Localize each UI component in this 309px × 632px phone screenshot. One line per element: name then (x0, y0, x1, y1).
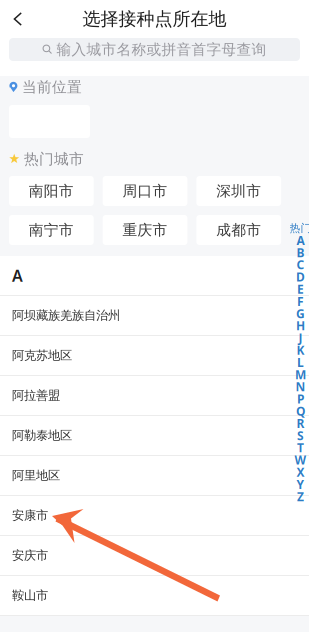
staticText: P (297, 391, 304, 407)
button[interactable]: E (292, 283, 309, 295)
button[interactable]: 安康市 (0, 496, 309, 536)
button[interactable]: K (292, 344, 309, 356)
staticText: H (296, 318, 305, 334)
staticText: J (298, 330, 302, 346)
staticText: 输入城市名称或拼音首字母查询 (56, 40, 266, 58)
staticText: L (297, 354, 304, 370)
button[interactable]: G (292, 307, 309, 320)
button[interactable]: 输入城市名称或拼音首字母查询 (9, 38, 300, 61)
button[interactable]: T (292, 442, 309, 454)
button[interactable]: 热门 (288, 222, 309, 234)
staticText: 阿克苏地区 (12, 348, 72, 363)
staticText: D (296, 269, 305, 285)
staticText: K (296, 342, 304, 358)
button[interactable]: S (292, 429, 309, 442)
staticText: Y (296, 476, 304, 492)
button[interactable]: 阿里地区 (0, 456, 309, 496)
staticText: M (295, 366, 306, 382)
button[interactable]: F (292, 295, 309, 307)
staticText: 深圳市 (216, 182, 261, 200)
staticText: 当前位置 (22, 78, 82, 96)
staticText: 重庆市 (123, 221, 168, 239)
button[interactable]: H (292, 320, 309, 332)
staticText: B (296, 244, 304, 260)
button[interactable]: W (292, 454, 309, 466)
button[interactable]: 阿拉善盟 (0, 376, 309, 416)
button[interactable]: 阿克苏地区 (0, 336, 309, 376)
button[interactable]: 返回 (0, 0, 36, 38)
button[interactable]: Z (292, 490, 309, 503)
button[interactable]: 阿勒泰地区 (0, 416, 309, 456)
staticText: 热门城市 (24, 150, 84, 168)
button[interactable]: C (292, 259, 309, 271)
staticText: F (297, 293, 304, 309)
button[interactable]: Y (292, 478, 309, 490)
staticText: 阿坝藏族羌族自治州 (12, 308, 120, 323)
button[interactable]: 南阳市 (9, 176, 94, 206)
staticText: A (296, 232, 304, 248)
staticText: 南宁市 (29, 221, 74, 239)
button[interactable]: 阿坝藏族羌族自治州 (0, 296, 309, 336)
button[interactable]: N (292, 381, 309, 393)
staticText: 安康市 (12, 508, 48, 523)
button[interactable]: 周口市 (103, 176, 187, 206)
button[interactable]: Q (292, 405, 309, 417)
staticText: 阿勒泰地区 (12, 428, 72, 443)
button[interactable]: R (292, 417, 309, 429)
button[interactable]: M (292, 368, 309, 381)
button[interactable]: 南宁市 (9, 215, 94, 245)
staticText: 鞍山市 (12, 588, 48, 603)
staticText: 阿拉善盟 (12, 388, 60, 403)
button[interactable]: 重庆市 (103, 215, 187, 245)
staticText: R (296, 415, 304, 431)
staticText: N (295, 379, 305, 395)
button[interactable]: J (292, 332, 309, 344)
button[interactable]: 深圳市 (196, 176, 281, 206)
button[interactable]: 鞍山市 (0, 576, 309, 616)
button[interactable]: 安庆市 (0, 536, 309, 576)
staticText: 南阳市 (29, 182, 74, 200)
staticText: W (294, 452, 306, 468)
button[interactable]: X (292, 466, 309, 478)
button[interactable]: 成都市 (196, 215, 281, 245)
button[interactable]: B (292, 246, 309, 259)
staticText: Q (296, 403, 305, 419)
button[interactable]: D (292, 271, 309, 283)
staticText: 选择接种点所在地 (82, 8, 226, 30)
staticText: 安庆市 (12, 548, 48, 563)
button[interactable]: L (292, 356, 309, 368)
button[interactable]: A (292, 234, 309, 246)
staticText: 阿里地区 (12, 468, 60, 483)
staticText: C (296, 257, 304, 273)
staticText: Z (297, 488, 304, 504)
staticText: T (297, 440, 304, 456)
staticText: 周口市 (123, 182, 168, 200)
staticText: G (296, 305, 305, 321)
staticText: A (12, 265, 23, 286)
staticText: 热门 (289, 221, 309, 235)
button[interactable]: P (292, 393, 309, 405)
staticText: X (296, 464, 304, 480)
staticText: S (297, 427, 304, 443)
staticText: 成都市 (216, 221, 261, 239)
staticText: E (297, 281, 304, 297)
